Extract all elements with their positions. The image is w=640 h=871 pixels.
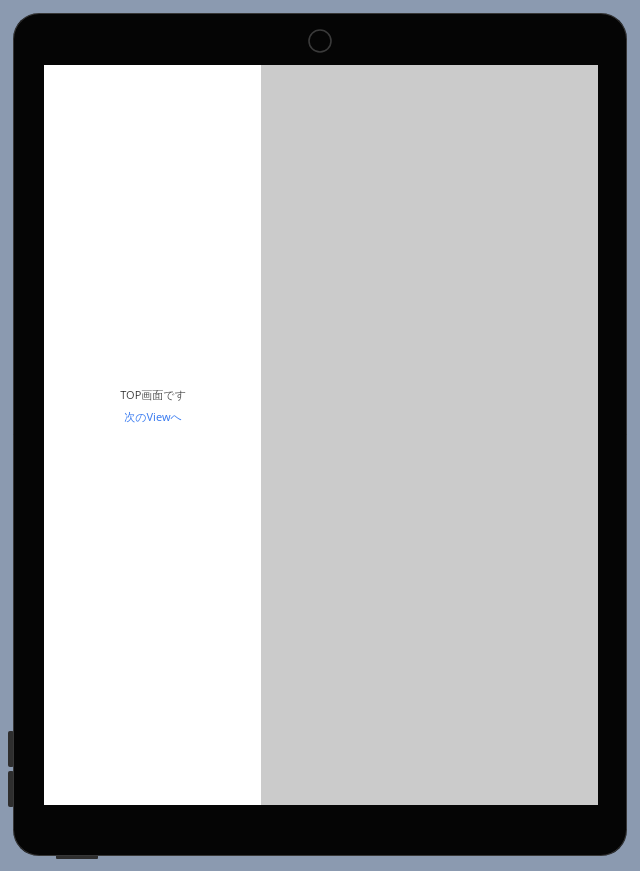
staticText: 次のViewへ xyxy=(124,409,182,424)
other: Tablet frame xyxy=(13,13,627,856)
staticText: TOP画面です xyxy=(120,387,186,402)
button[interactable]: 次のViewへ xyxy=(124,409,182,424)
